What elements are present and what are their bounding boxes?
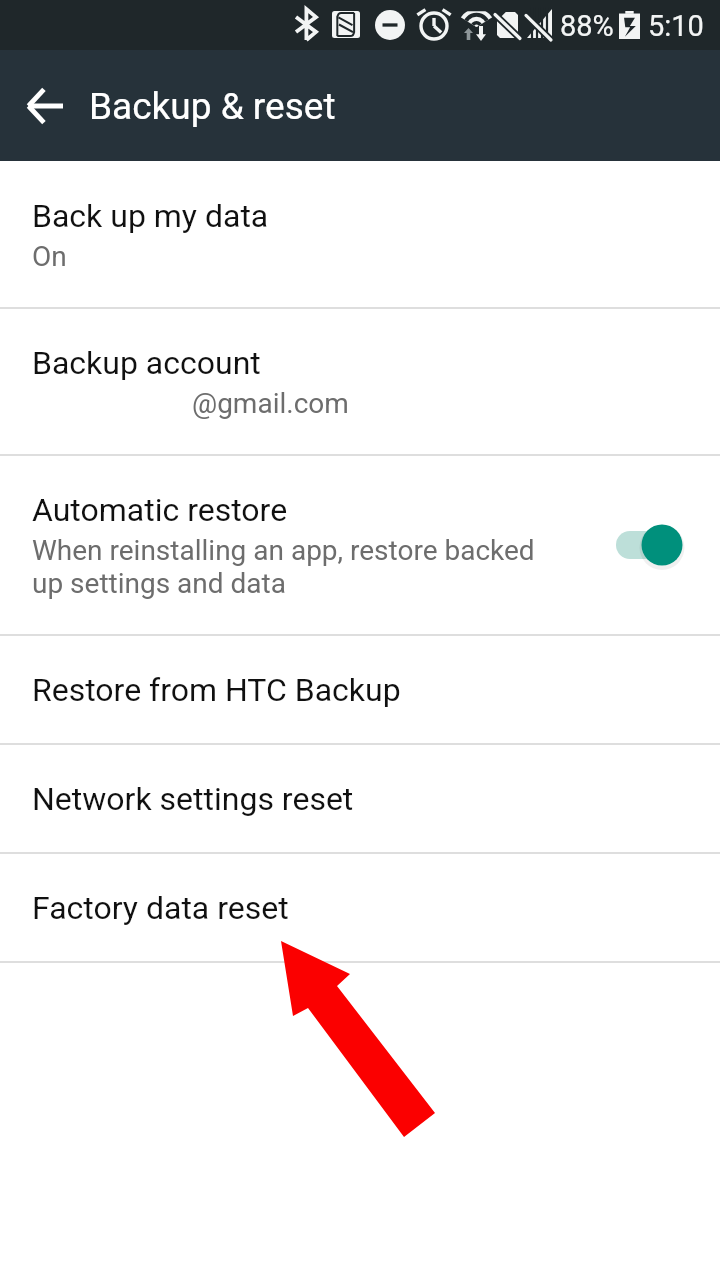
button[interactable]: Network settings reset (0, 744, 720, 853)
button[interactable]: Factory data reset (0, 853, 720, 962)
button[interactable]: Automatic restore switch, on (604, 513, 694, 569)
button[interactable]: Backup account (0, 308, 720, 455)
staticText: Factory data reset (32, 889, 289, 927)
staticText: When reinstalling an app, restore backed… (32, 534, 552, 600)
staticText: Restore from HTC Backup (32, 671, 401, 709)
staticText: Backup account (32, 344, 261, 382)
staticText: Backup & reset (89, 85, 336, 128)
staticText: Back up my data (32, 197, 269, 235)
staticText: Network settings reset (32, 780, 354, 818)
button[interactable]: Automatic restore (0, 455, 720, 635)
button[interactable]: Restore from HTC Backup (0, 635, 720, 744)
button[interactable]: Back up my data (0, 161, 720, 308)
staticText: On (32, 240, 67, 273)
button[interactable]: Navigate up (14, 75, 76, 137)
staticText: Automatic restore (32, 491, 288, 529)
staticText: 5:10 (648, 9, 704, 43)
staticText: 88% (560, 9, 614, 43)
staticText: @gmail.com (192, 387, 349, 420)
